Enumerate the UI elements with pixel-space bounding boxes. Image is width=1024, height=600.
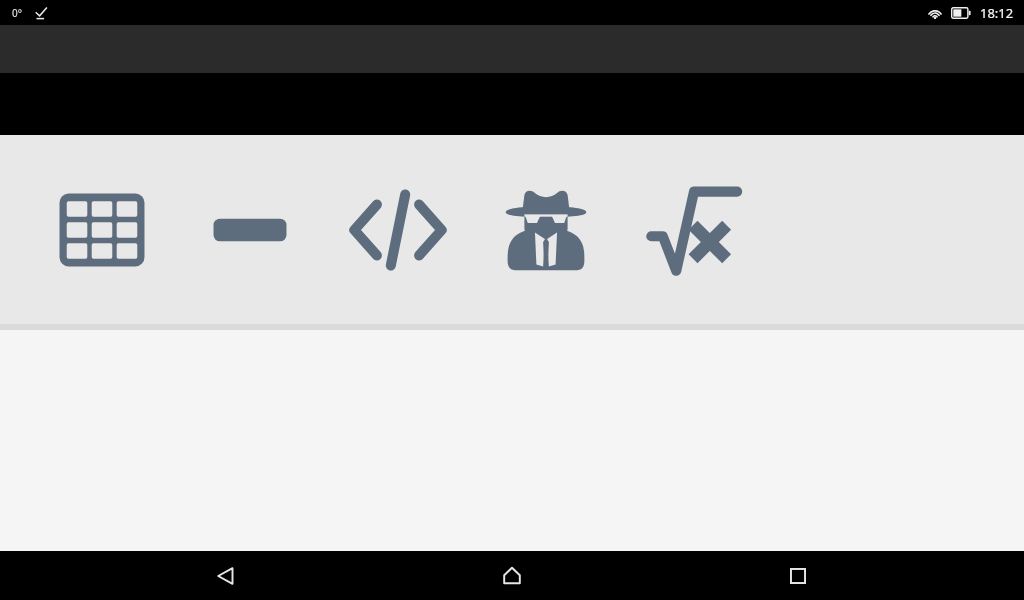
- button[interactable]: Home: [452, 551, 572, 600]
- button[interactable]: Incognito: [472, 135, 620, 324]
- button[interactable]: Table: [28, 135, 176, 324]
- button[interactable]: Back: [166, 551, 286, 600]
- staticText: 18:12: [980, 4, 1014, 22]
- staticText: 0°: [12, 6, 22, 20]
- button[interactable]: Square root: [620, 135, 768, 324]
- button[interactable]: Code: [324, 135, 472, 324]
- button[interactable]: Recent apps: [738, 551, 858, 600]
- button[interactable]: Insert line: [176, 135, 324, 324]
